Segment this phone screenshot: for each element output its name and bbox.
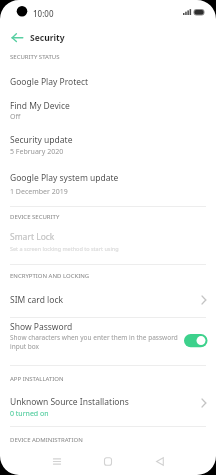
staticText: 1 December 2019 bbox=[10, 187, 68, 197]
staticText: APP INSTALLATION bbox=[10, 375, 64, 383]
staticText: Security update bbox=[10, 134, 73, 146]
staticText: 0 turned on bbox=[10, 409, 49, 419]
button[interactable] bbox=[91, 450, 125, 474]
staticText: Google Play system update bbox=[10, 172, 119, 184]
staticText: SECURITY STATUS bbox=[10, 53, 60, 61]
staticText: SIM card lock bbox=[10, 294, 64, 306]
staticText: ENCRYPTION AND LOCKING bbox=[10, 272, 90, 280]
staticText: Off bbox=[10, 112, 21, 122]
staticText: Unknown Source Installations bbox=[10, 396, 129, 408]
button[interactable]: Unknown Source Installations bbox=[0, 392, 216, 420]
button[interactable]: Show Password bbox=[0, 317, 216, 357]
button[interactable]: Google Play system update bbox=[0, 168, 216, 196]
button[interactable]: Security update bbox=[0, 130, 216, 158]
staticText: Smart Lock bbox=[10, 231, 55, 243]
staticText: Google Play Protect bbox=[10, 76, 89, 88]
button[interactable]: Find My Device bbox=[0, 96, 216, 122]
button[interactable]: Smart Lock bbox=[0, 227, 216, 259]
staticText: DEVICE SECURITY bbox=[10, 213, 60, 221]
staticText: Show characters when you enter them in t… bbox=[10, 333, 178, 342]
staticText: Security bbox=[30, 32, 65, 44]
staticText: Find My Device bbox=[10, 100, 70, 112]
button[interactable] bbox=[6, 29, 28, 47]
button[interactable]: SIM card lock bbox=[0, 290, 216, 312]
button[interactable] bbox=[40, 450, 74, 474]
button[interactable] bbox=[143, 450, 177, 474]
staticText: Set a screen locking method to start usi… bbox=[10, 245, 119, 252]
staticText: input box bbox=[10, 342, 39, 351]
staticText: DEVICE ADMINISTRATION bbox=[10, 436, 83, 444]
staticText: Show Password bbox=[10, 321, 73, 333]
staticText: 10:00 bbox=[33, 8, 54, 19]
button[interactable]: Google Play Protect bbox=[0, 70, 216, 92]
staticText: 5 February 2020 bbox=[10, 147, 64, 157]
